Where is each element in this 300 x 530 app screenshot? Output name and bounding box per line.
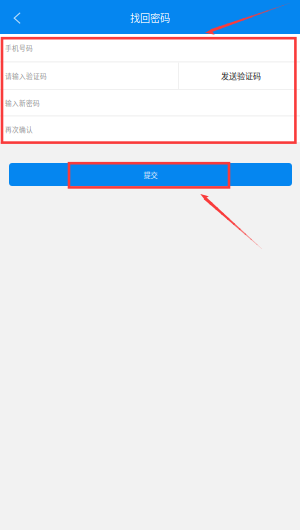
staticText: 输入新密码 [5,98,40,108]
button[interactable]: Back [0,0,34,34]
staticText: 再次确认 [5,124,33,134]
staticText: 提交 [143,169,157,180]
button[interactable]: 发送验证码 [179,62,300,89]
button[interactable]: 再次确认 [0,116,300,142]
staticText: 找回密码 [130,10,170,25]
staticText: 手机号码 [5,43,33,53]
button[interactable]: 提交 [9,163,292,186]
staticText: 请输入验证码 [5,71,47,81]
staticText: 发送验证码 [221,70,261,82]
button[interactable]: 输入新密码 [0,90,300,115]
button[interactable]: 手机号码 [0,34,300,61]
